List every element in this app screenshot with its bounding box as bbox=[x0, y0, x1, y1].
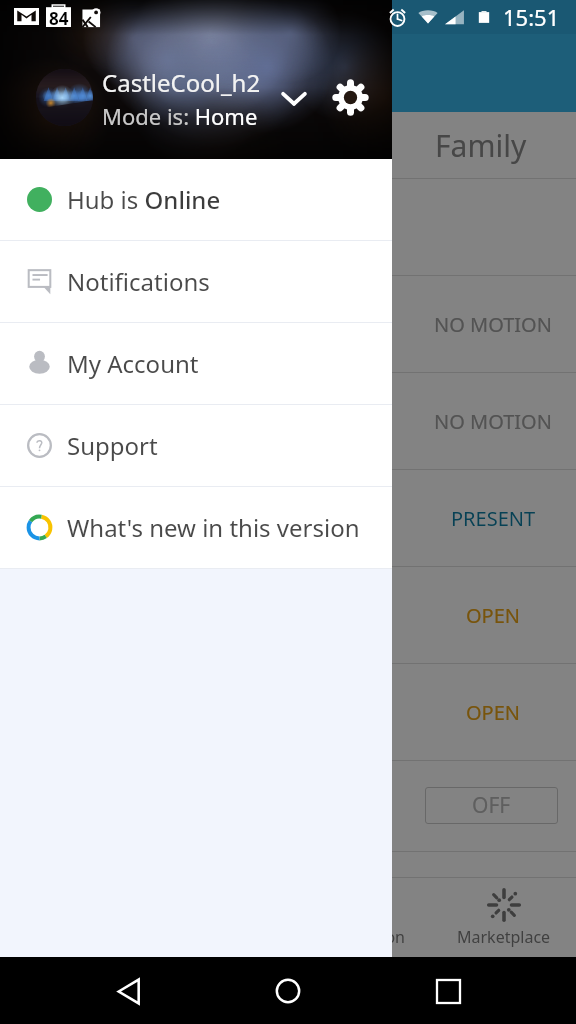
staticText: 84 bbox=[49, 7, 69, 29]
staticText: PRESENT bbox=[451, 505, 536, 532]
button[interactable]: OPEN bbox=[0, 664, 576, 760]
button[interactable]: NO MOTION bbox=[0, 373, 576, 469]
staticText: My Account bbox=[67, 347, 199, 380]
button[interactable]: My Account bbox=[0, 323, 392, 404]
staticText: What's new in this version bbox=[67, 511, 360, 544]
staticText: OPEN bbox=[466, 602, 521, 629]
staticText: OFF bbox=[472, 791, 511, 820]
button[interactable]: Notifications bbox=[0, 241, 392, 322]
button[interactable]: Support bbox=[0, 405, 392, 486]
button[interactable]: Home bbox=[257, 960, 319, 1022]
button[interactable]: Back bbox=[98, 960, 160, 1022]
staticText: Automation bbox=[316, 926, 405, 948]
button[interactable]: Marketplace bbox=[432, 878, 576, 957]
staticText: NO MOTION bbox=[434, 311, 552, 338]
staticText: OPEN bbox=[466, 699, 521, 726]
button[interactable]: Home photo bbox=[36, 69, 93, 126]
button[interactable]: Automation bbox=[288, 878, 432, 957]
button[interactable]: What's new in this version bbox=[0, 487, 392, 568]
button[interactable]: Hub is Online bbox=[0, 159, 392, 240]
staticText: Marketplace bbox=[457, 926, 551, 948]
button[interactable]: Switch location bbox=[270, 74, 318, 122]
staticText: Support bbox=[67, 429, 158, 462]
staticText: Notifications bbox=[67, 265, 210, 298]
button[interactable]: OPEN bbox=[0, 567, 576, 663]
staticText: Mode is: Home bbox=[102, 101, 258, 131]
staticText: Family bbox=[435, 125, 527, 166]
button[interactable]: NO MOTION bbox=[0, 276, 576, 372]
button[interactable]: OFF bbox=[425, 787, 558, 824]
button[interactable]: PRESENT bbox=[0, 470, 576, 566]
staticText: 15:51 bbox=[503, 2, 560, 32]
staticText: CastleCool_h2 bbox=[102, 66, 261, 99]
button[interactable]: Settings bbox=[325, 72, 375, 122]
button[interactable]: Recent apps bbox=[417, 960, 479, 1022]
staticText: Hub is Online bbox=[67, 183, 221, 216]
staticText: NO MOTION bbox=[434, 408, 552, 435]
button[interactable] bbox=[0, 179, 576, 275]
